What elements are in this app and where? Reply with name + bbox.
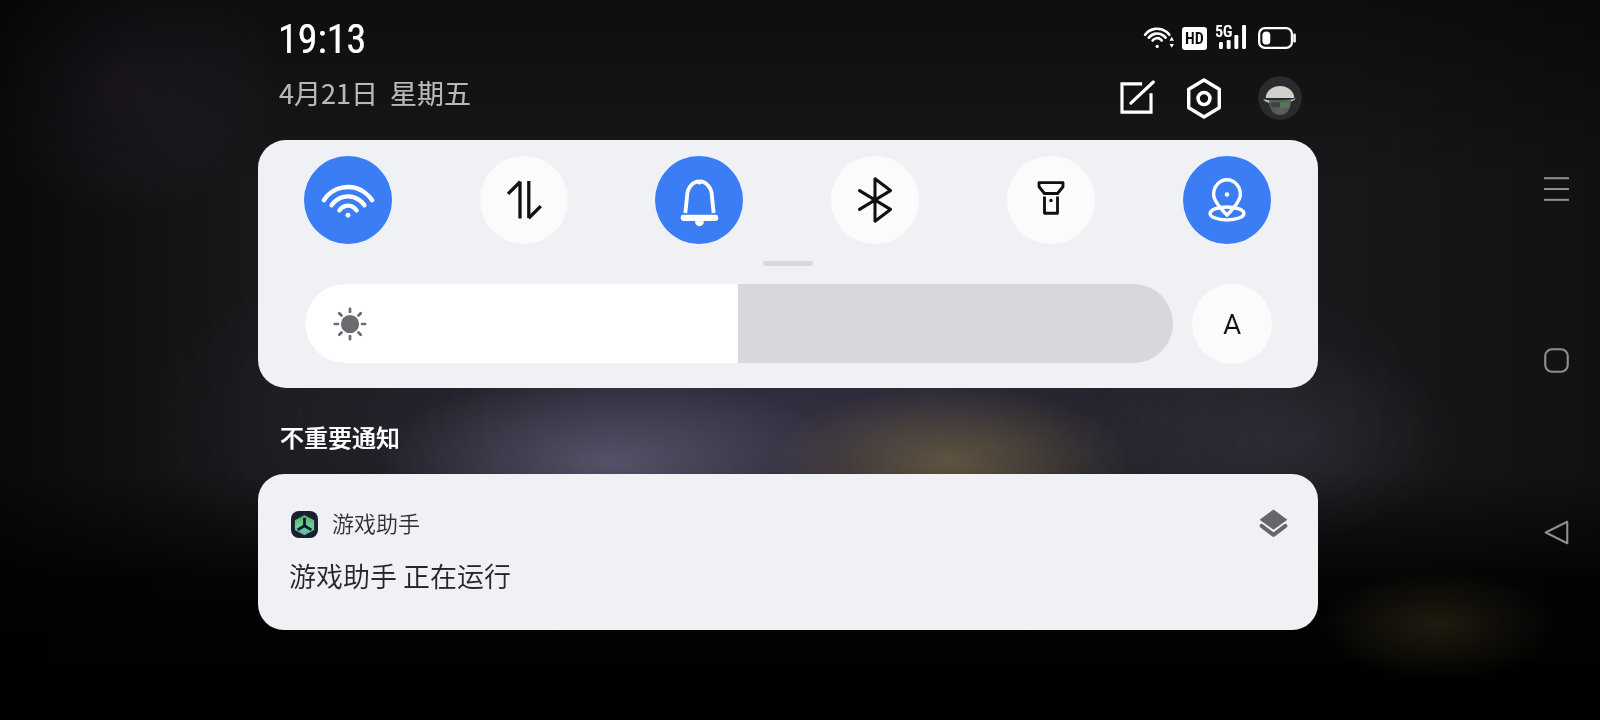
button[interactable]: Ringer <box>655 156 743 244</box>
staticText: 游戏助手 <box>332 506 421 538</box>
staticText: 4月21日 星期五 <box>279 73 472 112</box>
button[interactable]: Mobile data <box>480 156 568 244</box>
button[interactable]: Settings <box>1180 74 1228 122</box>
button[interactable]: Back <box>1532 508 1580 556</box>
button[interactable]: Home <box>1532 336 1580 384</box>
button[interactable]: Expand notification group <box>1252 502 1294 544</box>
button[interactable]: Recent apps <box>1532 164 1580 212</box>
staticText: 5G <box>1215 22 1233 41</box>
staticText: A <box>1223 308 1242 341</box>
button[interactable]: 游戏助手 <box>258 474 1318 630</box>
button[interactable]: Edit <box>1112 74 1160 122</box>
button[interactable] <box>305 284 1173 363</box>
staticText: 游戏助手 正在运行 <box>289 556 512 595</box>
staticText: 不重要通知 <box>280 419 400 454</box>
button[interactable]: Flashlight <box>1007 156 1095 244</box>
staticText: 19:13 <box>278 16 367 63</box>
button[interactable]: Bluetooth <box>831 156 919 244</box>
button[interactable]: User profile <box>1258 76 1302 120</box>
staticText: HD <box>1185 29 1204 48</box>
button[interactable]: Location <box>1183 156 1271 244</box>
button[interactable]: WLAN <box>304 156 392 244</box>
button[interactable]: Auto brightness <box>1192 284 1272 364</box>
